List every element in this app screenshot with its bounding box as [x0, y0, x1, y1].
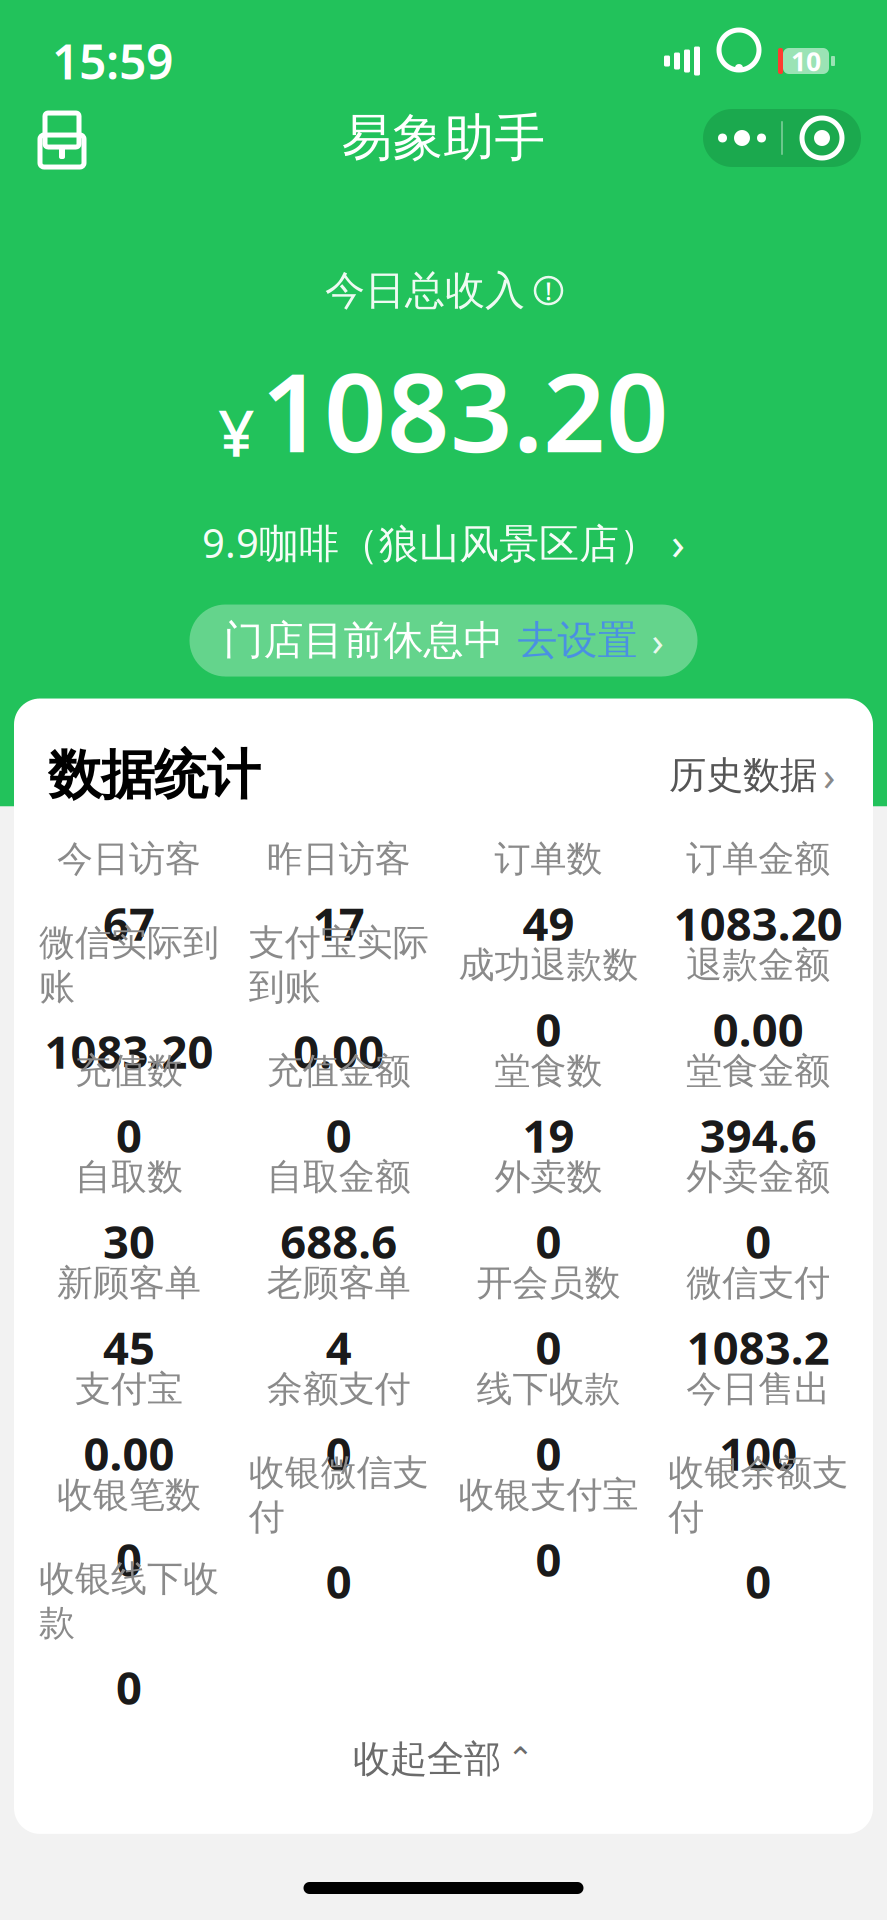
staticText: 收银笔数	[57, 1473, 201, 1517]
staticText: 收银支付宝	[458, 1473, 638, 1517]
staticText: 订单数	[494, 837, 602, 881]
staticText: 49	[522, 893, 574, 953]
staticText: 外卖数	[494, 1155, 602, 1199]
staticText: 线下收款	[476, 1367, 620, 1411]
staticText: 收起全部	[353, 1736, 501, 1782]
staticText: 退款金额	[686, 943, 830, 987]
staticText: 0	[745, 1551, 771, 1611]
staticText: 收银余额支付	[668, 1451, 848, 1539]
staticText: 0	[326, 1551, 352, 1611]
staticText: 0	[116, 1105, 142, 1165]
staticText: 去设置	[517, 616, 637, 665]
staticText: 688.6	[280, 1211, 397, 1271]
staticText: 15:59	[52, 29, 173, 93]
staticText: 4	[326, 1317, 352, 1377]
staticText: 易象助手	[341, 107, 545, 169]
button[interactable]: 历史数据	[665, 743, 839, 808]
staticText: ›	[651, 614, 663, 667]
staticText: 新顾客单	[57, 1261, 201, 1305]
staticText: 数据统计	[48, 742, 260, 808]
staticText: ›	[671, 512, 685, 572]
staticText: 0	[535, 1211, 561, 1271]
button[interactable]: 收起全部	[14, 1726, 873, 1792]
staticText: 0	[535, 1317, 561, 1377]
staticText: 0.00	[83, 1423, 174, 1483]
staticText: 1083.20	[261, 337, 669, 482]
staticText: 微信实际到账	[39, 921, 219, 1009]
button[interactable]: 更多	[703, 109, 781, 167]
staticText: 0	[535, 1423, 561, 1483]
staticText: 微信支付	[686, 1261, 830, 1305]
staticText: 订单金额	[686, 837, 830, 881]
staticText: 成功退款数	[458, 943, 638, 987]
staticText: 1083.20	[44, 1021, 213, 1081]
staticText: 1083.2	[687, 1317, 830, 1377]
button[interactable]: 9.9咖啡（狼山风景区店）	[196, 508, 691, 576]
staticText: 0	[535, 1529, 561, 1589]
staticText: 100	[719, 1423, 797, 1483]
staticText: 45	[103, 1317, 155, 1377]
staticText: 0	[326, 1423, 352, 1483]
staticText: 0	[116, 1657, 142, 1717]
staticText: 外卖金额	[686, 1155, 830, 1199]
staticText: ¥	[218, 389, 255, 474]
staticText: 0	[535, 999, 561, 1059]
staticText: 30	[103, 1211, 155, 1271]
staticText: 堂食数	[494, 1049, 602, 1093]
staticText: 今日总收入	[325, 266, 525, 315]
staticText: 394.6	[700, 1105, 817, 1165]
staticText: 支付宝	[75, 1367, 183, 1411]
staticText: 自取金额	[267, 1155, 411, 1199]
staticText: 充值金额	[267, 1049, 411, 1093]
staticText: 0	[116, 1529, 142, 1589]
staticText: 10	[791, 43, 821, 79]
staticText: 堂食金额	[686, 1049, 830, 1093]
staticText: ›	[823, 749, 835, 802]
staticText: 今日售出	[686, 1367, 830, 1411]
staticText: 19	[522, 1105, 574, 1165]
staticText: 0	[745, 1211, 771, 1271]
staticText: 门店目前休息中	[223, 616, 503, 665]
staticText: 0	[326, 1105, 352, 1165]
staticText: 收银微信支付	[249, 1451, 429, 1539]
button[interactable]: 关闭	[783, 109, 861, 167]
staticText: 自取数	[75, 1155, 183, 1199]
staticText: ⌃	[507, 1741, 534, 1777]
button[interactable]: 首页	[26, 102, 98, 174]
staticText: 支付宝实际到账	[249, 921, 429, 1009]
staticText: !	[545, 274, 552, 307]
staticText: 1083.20	[674, 893, 843, 953]
staticText: 收银线下收款	[39, 1557, 219, 1645]
staticText: 0.00	[293, 1021, 384, 1081]
staticText: 开会员数	[476, 1261, 620, 1305]
staticText: 9.9咖啡（狼山风景区店）	[202, 516, 659, 569]
staticText: 67	[103, 893, 155, 953]
button[interactable]: 门店目前休息中	[189, 604, 697, 676]
staticText: 17	[313, 893, 365, 953]
staticText: 充值数	[75, 1049, 183, 1093]
staticText: 余额支付	[267, 1367, 411, 1411]
staticText: 昨日访客	[267, 837, 411, 881]
staticText: 今日访客	[57, 837, 201, 881]
staticText: 历史数据	[669, 752, 817, 798]
staticText: 0.00	[713, 999, 804, 1059]
staticText: 老顾客单	[267, 1261, 411, 1305]
